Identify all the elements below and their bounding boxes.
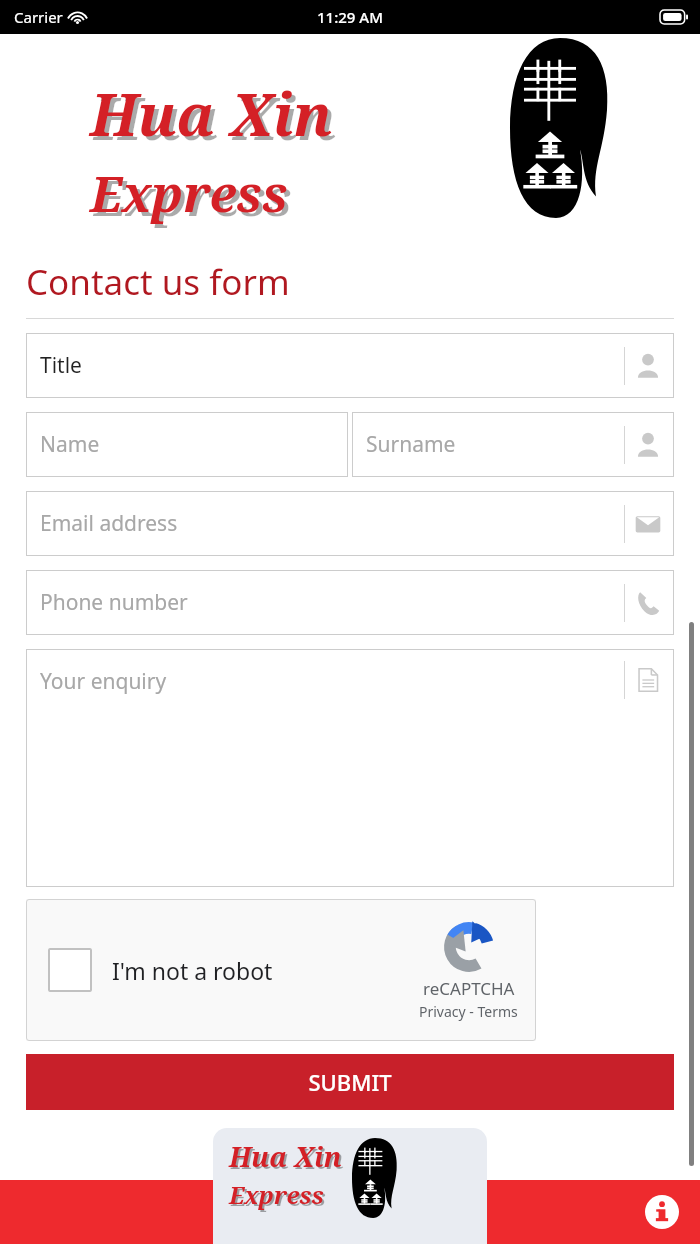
staticText: Surname	[366, 430, 456, 459]
staticText: Express	[90, 159, 288, 227]
button[interactable]: I'm not a robot	[26, 899, 536, 1041]
staticText: I'm not a robot	[112, 955, 273, 986]
staticText: Hua Xin	[94, 78, 337, 157]
staticText: 11:29 AM	[317, 7, 383, 27]
staticText: Contact us form	[26, 258, 290, 306]
staticText: Name	[40, 430, 100, 459]
button[interactable]: Info	[642, 1192, 682, 1232]
button[interactable]: SUBMIT	[26, 1054, 674, 1110]
staticText: Express	[231, 1180, 326, 1213]
staticText: reCAPTCHA	[423, 977, 515, 1000]
staticText: Express	[229, 1178, 324, 1211]
button[interactable]: Your enquiry	[26, 649, 674, 887]
staticText: Hua Xin	[229, 1138, 342, 1175]
staticText: Hua Xin	[90, 74, 333, 153]
button[interactable]: Title	[26, 333, 674, 398]
button[interactable]: Email address	[26, 491, 674, 556]
staticText: Your enquiry	[40, 667, 167, 696]
staticText: Express	[94, 163, 292, 231]
staticText: Carrier	[14, 7, 63, 27]
staticText: Hua Xin	[231, 1140, 344, 1177]
staticText: Phone number	[40, 588, 188, 617]
button[interactable]: Surname	[352, 412, 674, 477]
button[interactable]: Name	[26, 412, 348, 477]
staticText: Privacy - Terms	[419, 1002, 518, 1021]
staticText: SUBMIT	[308, 1067, 392, 1097]
staticText: Title	[40, 351, 82, 380]
staticText: Email address	[40, 509, 178, 538]
button[interactable]: Phone number	[26, 570, 674, 635]
